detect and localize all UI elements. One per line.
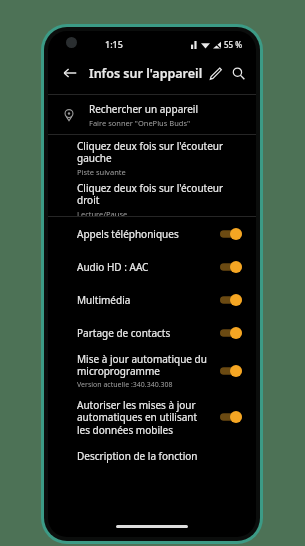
staticText: Cliquez deux fois sur l'écouteur gauche [77,139,238,165]
button[interactable]: Autoriser les mises à jour automatiques … [48,393,256,441]
button[interactable]: Toggle [220,327,242,339]
button[interactable]: Toggle [220,411,242,423]
staticText: Mise à jour automatique du microprogramm… [77,352,212,378]
button[interactable]: Audio HD : AAC [48,250,256,283]
button[interactable]: Search [231,61,246,85]
button[interactable]: Mise à jour automatique du microprogramm… [48,349,256,393]
staticText: Faire sonner "OnePlus Buds" [89,118,191,128]
button[interactable]: Cliquez deux fois sur l'écouteur droit [48,181,256,216]
button[interactable]: Appels téléphoniques [48,217,256,250]
staticText: Audio HD : AAC [77,260,212,274]
button[interactable]: Toggle [220,261,242,273]
button[interactable]: Toggle [220,365,242,377]
staticText: 55 % [224,39,243,50]
staticText: Appels téléphoniques [77,227,212,241]
staticText: Cliquez deux fois sur l'écouteur droit [77,181,238,207]
button[interactable]: Multimédia [48,283,256,316]
button[interactable]: Partage de contacts [48,316,256,349]
button[interactable]: Description de la fonction [48,441,256,471]
button[interactable]: Edit [203,61,227,85]
staticText: Version actuelle :340.340.308 [77,380,173,390]
staticText: Infos sur l'appareil [89,65,203,82]
button[interactable]: Toggle [220,228,242,240]
staticText: 1:15 [105,38,123,50]
staticText: Description de la fonction [77,449,198,463]
button[interactable]: Back [58,61,82,85]
staticText: Autoriser les mises à jour automatiques … [77,398,212,437]
button[interactable]: Rechercher un appareil [48,95,256,134]
staticText: Lecture/Pause [77,209,128,216]
button[interactable]: Toggle [220,294,242,306]
staticText: Partage de contacts [77,326,212,340]
staticText: Multimédia [77,293,212,307]
staticText: Piste suivante [77,167,126,177]
staticText: Rechercher un appareil [89,102,198,116]
button[interactable]: Cliquez deux fois sur l'écouteur gauche [48,135,256,181]
